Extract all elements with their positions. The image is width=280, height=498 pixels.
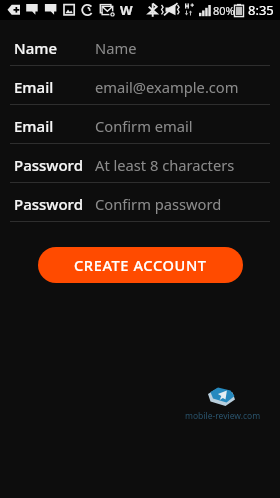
staticText: Confirm email: [95, 116, 193, 136]
button[interactable]: CREATE ACCOUNT: [38, 247, 243, 283]
button[interactable]: Password: [0, 144, 280, 183]
staticText: 80%: [213, 3, 235, 18]
staticText: Confirm password: [95, 194, 222, 214]
staticText: CREATE ACCOUNT: [74, 255, 207, 275]
staticText: W: [120, 1, 133, 19]
staticText: Name: [14, 38, 58, 58]
staticText: mobile-review.com: [185, 410, 261, 422]
button[interactable]: Email: [0, 105, 280, 144]
staticText: Email: [14, 77, 54, 97]
staticText: 8:35: [248, 1, 274, 19]
staticText: Password: [14, 194, 83, 214]
button[interactable]: Password: [0, 183, 280, 222]
staticText: Password: [14, 155, 83, 175]
staticText: Name: [95, 38, 137, 58]
staticText: email@example.com: [95, 77, 239, 97]
staticText: Email: [14, 116, 54, 136]
button[interactable]: Name: [0, 27, 280, 66]
button[interactable]: Email: [0, 66, 280, 105]
staticText: At least 8 characters: [95, 155, 235, 175]
